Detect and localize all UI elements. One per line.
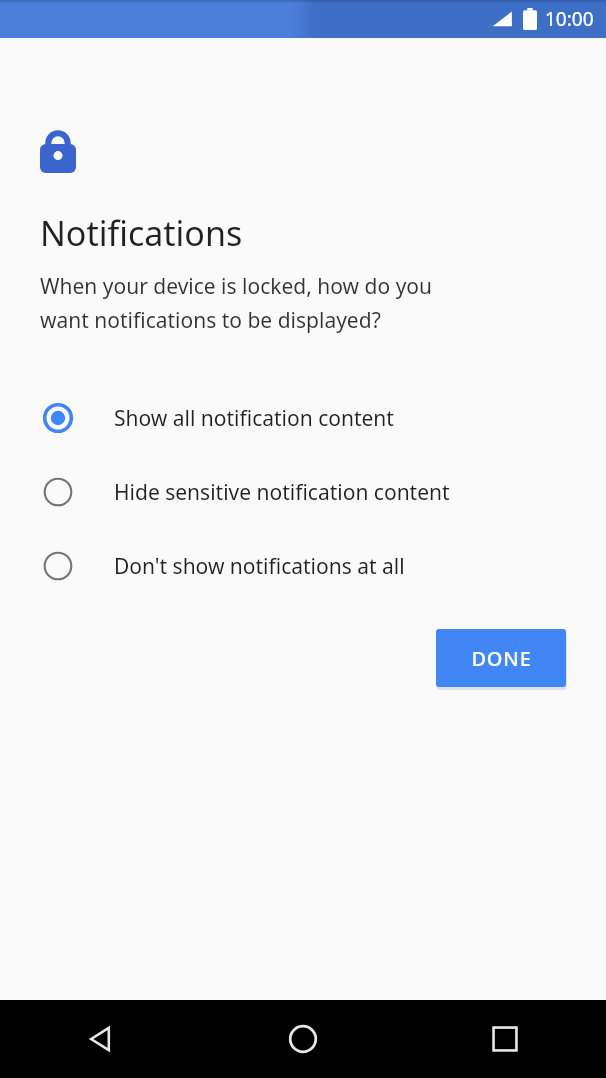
button[interactable]: Home [202,1000,404,1078]
button[interactable]: DONE [436,629,566,687]
staticText: Show all notification content [114,404,394,433]
staticText: Notifications [40,210,243,256]
staticText: 10:00 [545,6,594,32]
button[interactable]: Don't show notifications at all [40,529,566,603]
button[interactable]: Back [0,1000,202,1078]
button[interactable]: Recent apps [404,1000,606,1078]
button[interactable]: Show all notification content [40,381,566,455]
button[interactable]: Hide sensitive notification content [40,455,566,529]
other: Lock [40,123,76,173]
staticText: When your device is locked, how do you w… [40,272,433,334]
staticText: Hide sensitive notification content [114,478,450,507]
staticText: Don't show notifications at all [114,552,405,581]
staticText: DONE [471,645,532,672]
